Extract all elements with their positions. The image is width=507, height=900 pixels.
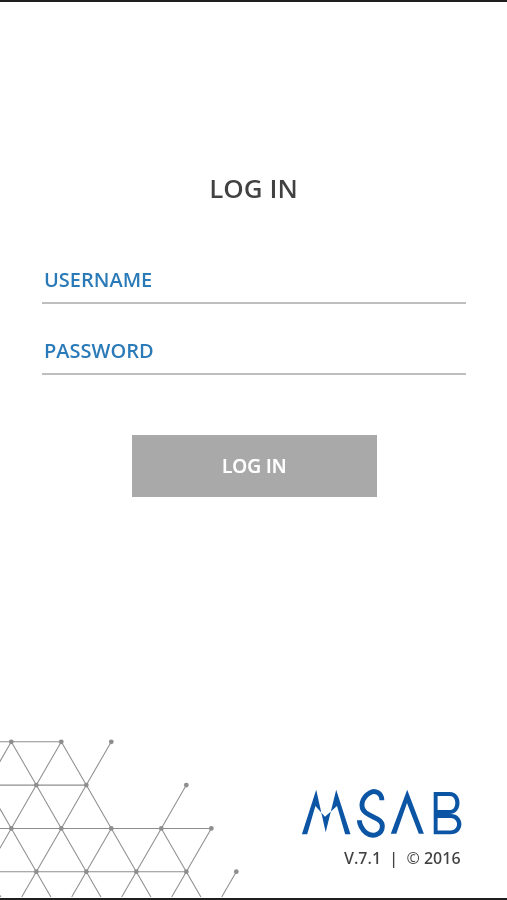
other: MSAB logo bbox=[300, 786, 466, 838]
staticText: PASSWORD bbox=[44, 337, 154, 364]
staticText: V.7.1 | © 2016 bbox=[344, 847, 461, 869]
staticText: LOG IN bbox=[222, 453, 287, 479]
staticText: USERNAME bbox=[44, 266, 153, 293]
button[interactable]: USERNAME bbox=[42, 262, 466, 304]
button[interactable]: LOG IN bbox=[132, 435, 377, 497]
button[interactable]: PASSWORD bbox=[42, 333, 466, 375]
staticText: LOG IN bbox=[0, 170, 507, 205]
